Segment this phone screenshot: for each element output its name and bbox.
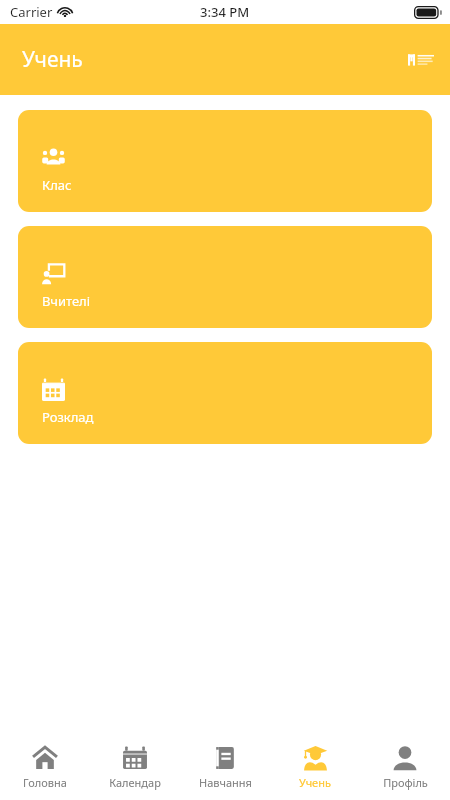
staticText: Навчання (199, 775, 252, 790)
staticText: 3:34 PM (200, 3, 250, 21)
button[interactable]: Вчителі (18, 226, 432, 328)
staticText: Вчителі (42, 292, 91, 310)
button[interactable]: Учень (270, 734, 360, 800)
button[interactable]: Клас (18, 110, 432, 212)
button[interactable]: Календар (90, 734, 180, 800)
staticText: Carrier (10, 3, 53, 21)
button[interactable]: Menu (404, 43, 438, 77)
staticText: Розклад (42, 408, 94, 426)
staticText: Учень (299, 775, 331, 790)
staticText: Головна (23, 775, 67, 790)
button[interactable]: Навчання (180, 734, 270, 800)
button[interactable]: Профіль (360, 734, 450, 800)
staticText: Календар (109, 775, 161, 790)
staticText: Профіль (383, 775, 428, 790)
staticText: Учень (22, 45, 83, 74)
button[interactable]: Розклад (18, 342, 432, 444)
button[interactable]: Головна (0, 734, 90, 800)
staticText: Клас (42, 176, 72, 194)
